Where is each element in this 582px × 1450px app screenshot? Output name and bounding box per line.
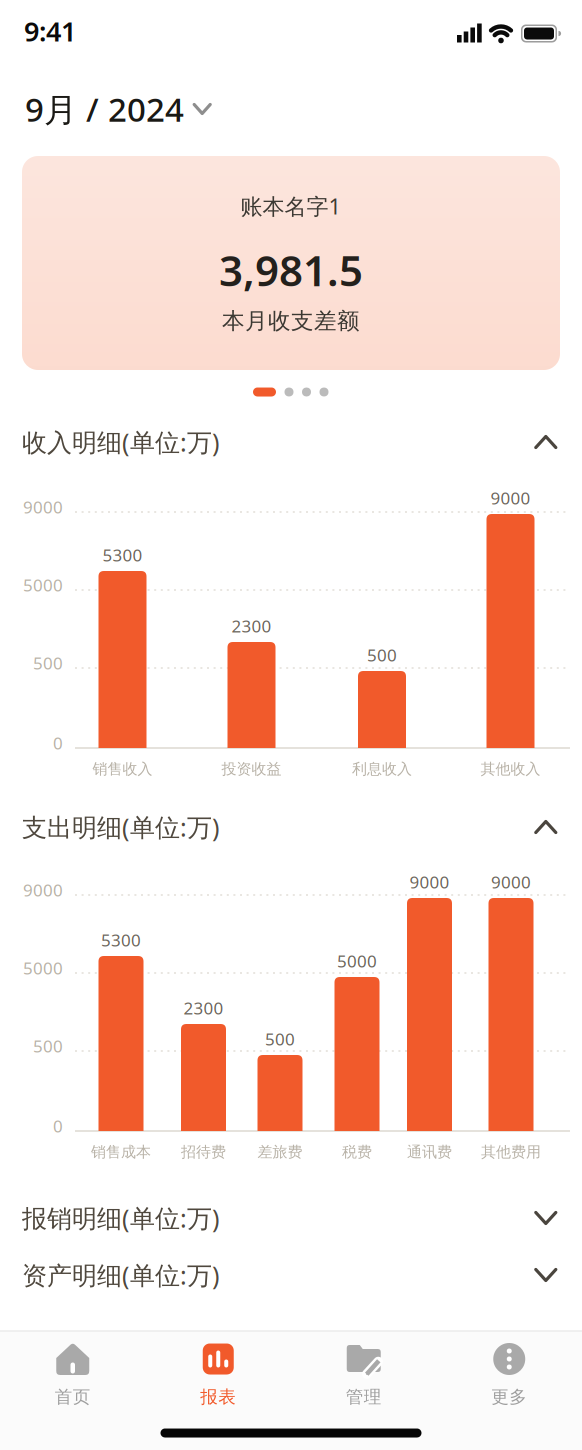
staticText: 其他费用 — [481, 1143, 541, 1161]
staticText: 支出明细(单位:万) — [22, 810, 220, 844]
staticText: 报销明细(单位:万) — [22, 1201, 220, 1235]
staticText: 其他收入 — [480, 760, 540, 778]
staticText: 9000 — [409, 870, 449, 894]
staticText: 500 — [33, 651, 63, 675]
staticText: 利息收入 — [352, 760, 412, 778]
staticText: 5300 — [101, 928, 141, 952]
staticText: 销售收入 — [92, 760, 152, 778]
button[interactable]: 管理 — [291, 1333, 436, 1423]
button[interactable]: 9月 / 2024 — [0, 86, 213, 131]
staticText: 5300 — [102, 543, 142, 567]
staticText: 5000 — [23, 573, 63, 597]
button[interactable]: 更多 — [437, 1333, 582, 1423]
staticText: 本月收支差额 — [222, 307, 360, 335]
staticText: 9:41 — [24, 13, 76, 49]
staticText: 投资收益 — [221, 760, 281, 778]
staticText: 5000 — [337, 949, 377, 973]
staticText: 9000 — [23, 878, 63, 902]
button[interactable]: 首页 — [0, 1333, 145, 1423]
staticText: 销售成本 — [91, 1143, 151, 1161]
staticText: 招待费 — [181, 1143, 226, 1161]
staticText: 9000 — [23, 495, 63, 519]
staticText: 0 — [53, 731, 63, 755]
staticText: 账本名字1 — [240, 191, 341, 221]
staticText: 首页 — [55, 1386, 91, 1408]
staticText: 500 — [367, 643, 397, 667]
staticText: 3,981.5 — [219, 241, 363, 299]
staticText: 2300 — [231, 614, 271, 638]
staticText: 差旅费 — [257, 1143, 302, 1161]
staticText: 9000 — [491, 870, 531, 894]
staticText: 500 — [265, 1027, 295, 1051]
staticText: 资产明细(单位:万) — [22, 1258, 220, 1292]
staticText: 管理 — [346, 1386, 382, 1408]
staticText: 税费 — [342, 1143, 372, 1161]
staticText: 500 — [33, 1034, 63, 1058]
staticText: 收入明细(单位:万) — [22, 425, 220, 459]
staticText: 更多 — [491, 1386, 527, 1408]
staticText: 报表 — [200, 1386, 236, 1408]
button[interactable]: 报表 — [146, 1333, 291, 1423]
staticText: 通讯费 — [407, 1143, 452, 1161]
button[interactable]: 支出明细(单位:万) — [0, 798, 582, 856]
staticText: 2300 — [183, 996, 223, 1020]
button[interactable]: 收入明细(单位:万) — [0, 413, 582, 471]
button[interactable]: 报销明细(单位:万) — [0, 1189, 582, 1247]
staticText: 0 — [53, 1114, 63, 1138]
staticText: 9000 — [490, 486, 530, 510]
button[interactable]: 资产明细(单位:万) — [0, 1246, 582, 1304]
staticText: 5000 — [23, 956, 63, 980]
staticText: 9月 / 2024 — [25, 86, 184, 131]
